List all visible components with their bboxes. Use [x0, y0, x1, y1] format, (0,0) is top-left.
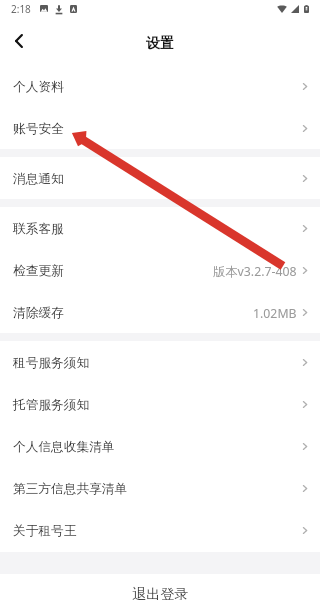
- staticText: 退出登录: [132, 585, 189, 600]
- staticText: 设置: [146, 35, 174, 53]
- staticText: 租号服务须知: [13, 355, 90, 371]
- button[interactable]: 托管服务须知: [0, 383, 320, 425]
- staticText: 检查更新: [13, 263, 64, 279]
- button[interactable]: 个人信息收集清单: [0, 425, 320, 467]
- staticText: 清除缓存: [13, 305, 64, 321]
- staticText: 第三方信息共享清单: [13, 481, 128, 497]
- button[interactable]: 第三方信息共享清单: [0, 467, 320, 509]
- button[interactable]: 租号服务须知: [0, 341, 320, 383]
- staticText: 消息通知: [13, 171, 64, 187]
- button[interactable]: 消息通知: [0, 157, 320, 199]
- staticText: 关于租号王: [13, 523, 77, 539]
- staticText: 托管服务须知: [13, 397, 90, 413]
- staticText: 个人资料: [13, 79, 64, 95]
- staticText: 联系客服: [13, 221, 64, 237]
- button[interactable]: 联系客服: [0, 207, 320, 249]
- button[interactable]: 清除缓存: [0, 291, 320, 333]
- staticText: 个人信息收集清单: [13, 439, 115, 455]
- button[interactable]: 关于租号王: [0, 509, 320, 551]
- button[interactable]: 检查更新: [0, 249, 320, 291]
- staticText: 版本v3.2.7-408: [213, 263, 297, 280]
- staticText: 1.02MB: [253, 305, 297, 322]
- staticText: 2:18: [11, 2, 31, 16]
- button[interactable]: 个人资料: [0, 65, 320, 107]
- button[interactable]: 账号安全: [0, 107, 320, 149]
- staticText: 账号安全: [13, 121, 64, 137]
- button[interactable]: 退出登录: [0, 574, 320, 600]
- button[interactable]: Back: [0, 21, 39, 61]
